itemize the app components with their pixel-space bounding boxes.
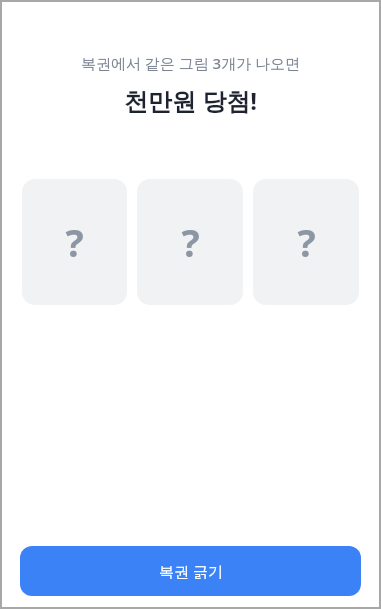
button[interactable]: 복권 칸 2 (137, 179, 243, 305)
staticText: ? (181, 216, 200, 268)
button[interactable]: 복권 칸 1 (22, 179, 127, 305)
button[interactable]: 복권 긁기 (20, 546, 361, 596)
staticText: 복권 긁기 (159, 561, 223, 581)
staticText: ? (65, 216, 84, 268)
staticText: 천만원 당첨! (0, 84, 381, 117)
button[interactable]: 복권 칸 3 (253, 179, 359, 305)
staticText: 복권에서 같은 그림 3개가 나오면 (0, 53, 381, 73)
staticText: ? (297, 216, 316, 268)
